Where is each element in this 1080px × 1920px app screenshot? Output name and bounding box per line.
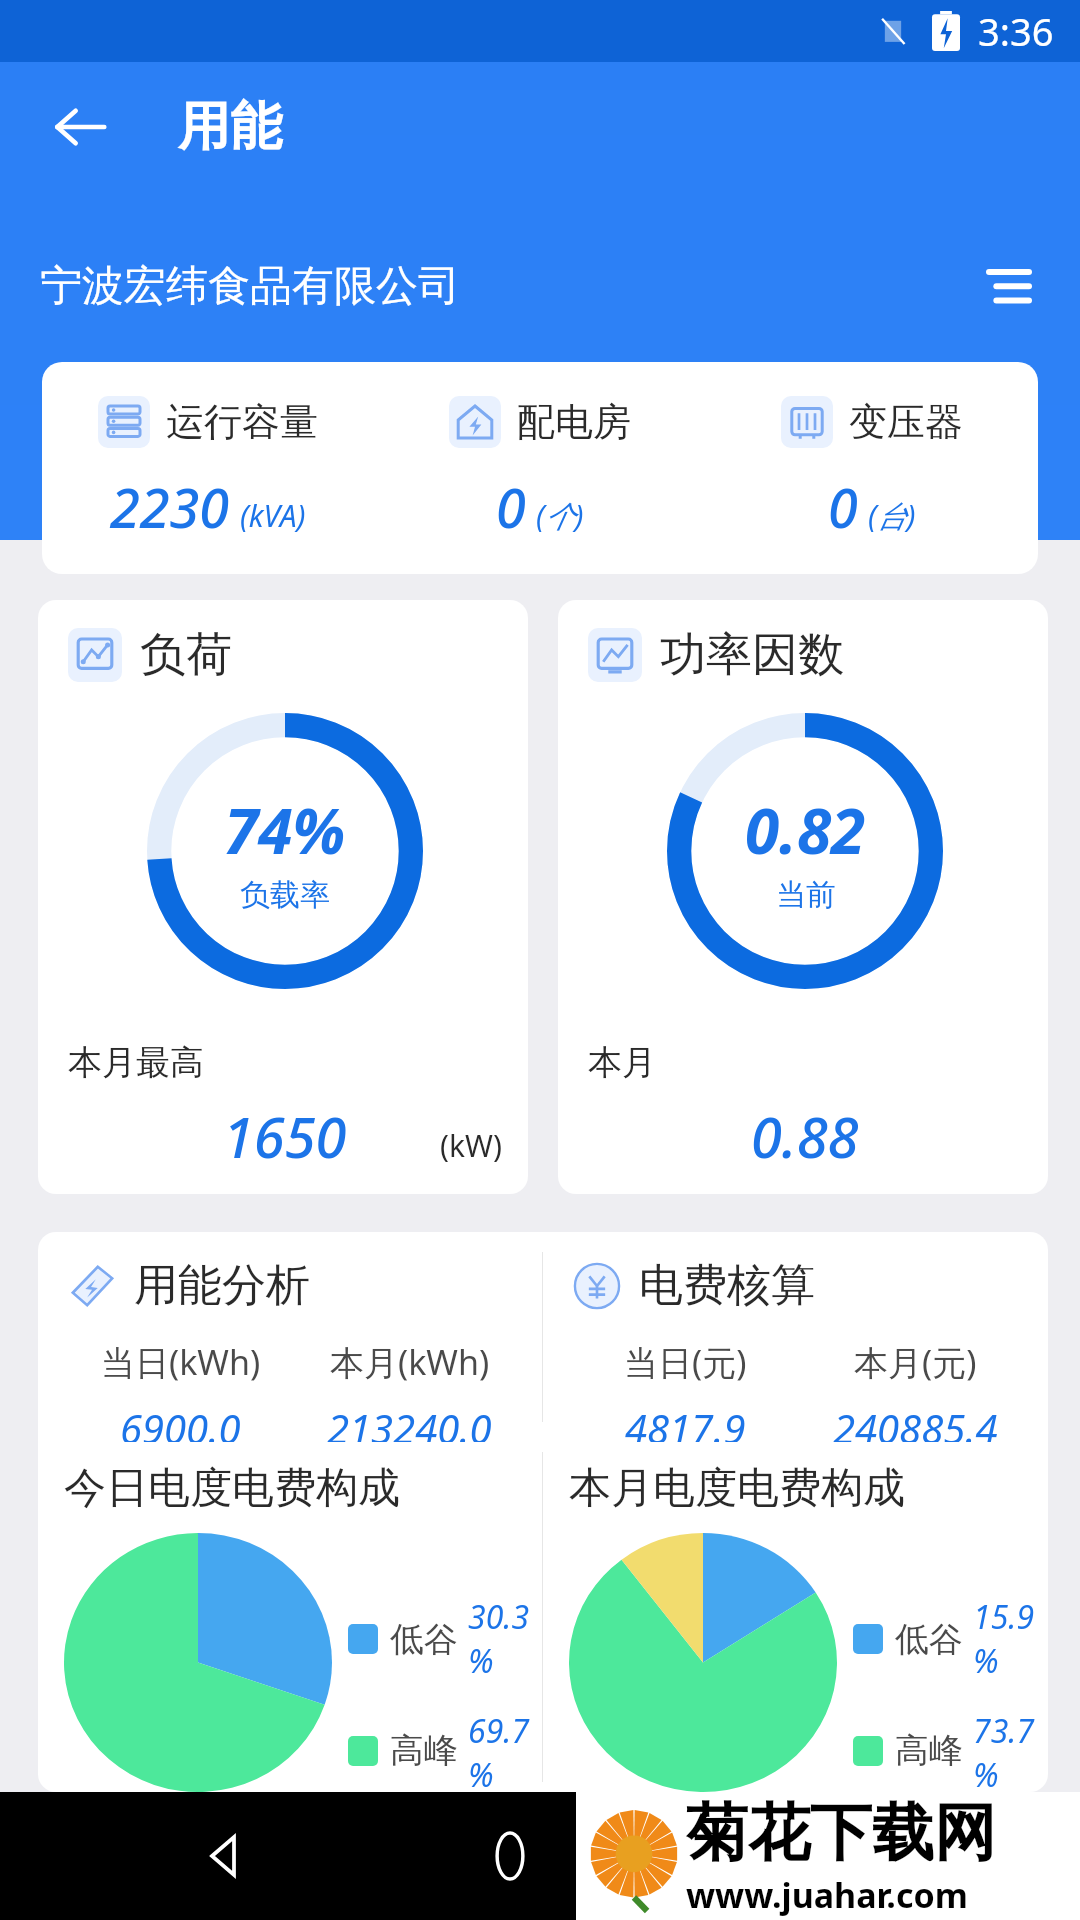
staticText: 30.3% [468, 1595, 542, 1683]
staticText: 69.7% [468, 1709, 542, 1792]
staticText: 今日电度电费构成 [64, 1462, 400, 1515]
staticText: 4817.9 [625, 1401, 746, 1442]
staticText: 本月 [588, 1041, 656, 1084]
staticText: 0.88 [751, 1098, 859, 1174]
staticText: 本月电度电费构成 [569, 1462, 905, 1515]
staticText: 高峰 [390, 1729, 458, 1772]
staticText: 宁波宏纬食品有限公司 [40, 260, 460, 313]
button[interactable]: 负荷 [38, 600, 528, 1194]
staticText: (kVA) [240, 495, 306, 536]
staticText: 15.9% [973, 1595, 1048, 1683]
staticText: 本月最高 [68, 1041, 204, 1084]
staticText: 配电房 [517, 398, 631, 446]
staticText: 本月(kWh) [330, 1339, 490, 1385]
staticText: 变压器 [849, 398, 963, 446]
staticText: 0 [828, 470, 858, 544]
staticText: 功率因数 [660, 626, 844, 684]
staticText: 213240.0 [327, 1401, 492, 1442]
staticText: 电费核算 [639, 1258, 815, 1313]
staticText: 低谷 [895, 1618, 963, 1661]
staticText: 负载率 [240, 876, 330, 914]
staticText: 低谷 [390, 1618, 458, 1661]
staticText: 当前 [776, 876, 836, 914]
staticText: 74% [224, 788, 346, 872]
button[interactable]: 功率因数 [558, 600, 1048, 1194]
staticText: 2230 [110, 470, 230, 544]
staticText: 当日(元) [624, 1339, 747, 1385]
button[interactable]: Menu [972, 249, 1046, 323]
staticText: 用能分析 [134, 1258, 310, 1313]
staticText: 本月(元) [854, 1339, 977, 1385]
button[interactable]: Back [180, 1814, 264, 1898]
staticText: 负荷 [140, 626, 232, 684]
button[interactable]: 用能分析 [38, 1232, 1048, 1792]
button[interactable]: Back [36, 83, 124, 171]
staticText: (kW) [440, 1125, 502, 1166]
staticText: 高峰 [895, 1729, 963, 1772]
staticText: 240885.4 [833, 1401, 998, 1442]
button[interactable]: 运行容量 [42, 362, 1038, 574]
staticText: 1650 [223, 1098, 347, 1174]
staticText: 0 [496, 470, 526, 544]
staticText: 6900.0 [120, 1401, 241, 1442]
staticText: www.juahar.com [686, 1872, 968, 1918]
staticText: 运行容量 [166, 398, 318, 446]
staticText: (个) [536, 495, 584, 536]
staticText: (台) [868, 495, 916, 536]
staticText: 用能 [178, 94, 282, 160]
staticText: 0.82 [745, 788, 866, 872]
staticText: 3:36 [978, 5, 1054, 57]
button[interactable]: Home [468, 1814, 552, 1898]
staticText: 菊花下载网 [686, 1794, 996, 1872]
staticText: 73.7% [973, 1709, 1048, 1792]
staticText: 当日(kWh) [101, 1339, 261, 1385]
